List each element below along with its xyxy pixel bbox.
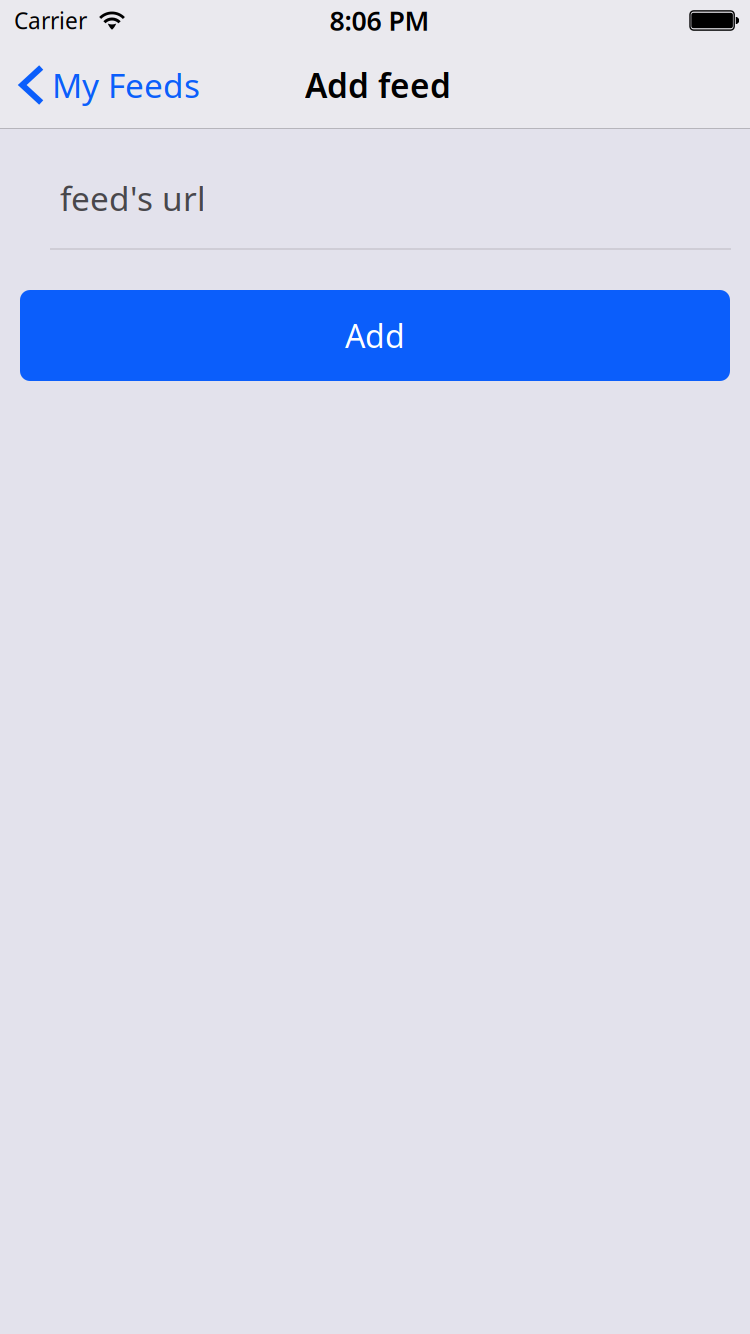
staticText: Add xyxy=(345,314,405,357)
staticText: Carrier xyxy=(14,5,87,35)
staticText: feed's url xyxy=(60,176,206,220)
staticText: My Feeds xyxy=(52,63,200,107)
button[interactable]: My Feeds xyxy=(0,41,212,129)
button[interactable]: feed's url xyxy=(0,148,750,250)
staticText: Add feed xyxy=(305,63,451,107)
staticText: 8:06 PM xyxy=(329,3,429,38)
button[interactable]: Add xyxy=(20,290,730,381)
